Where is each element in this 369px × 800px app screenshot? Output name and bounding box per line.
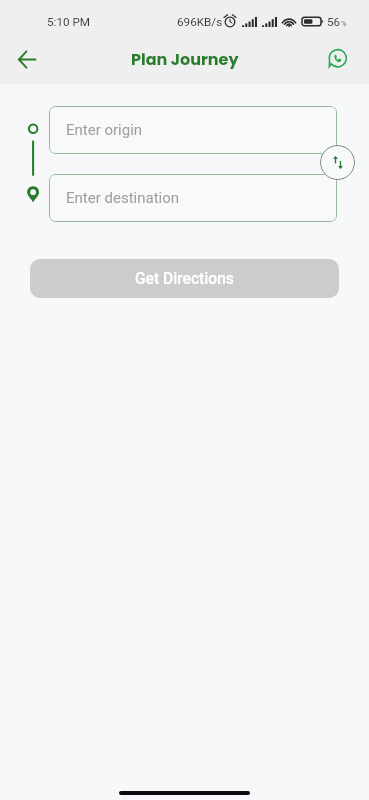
staticText: 696KB/s xyxy=(177,15,223,29)
button[interactable]: Enter origin xyxy=(49,106,337,154)
staticText: % xyxy=(341,19,347,28)
button[interactable]: WhatsApp xyxy=(320,42,353,75)
staticText: 56 xyxy=(327,15,341,29)
staticText: Enter destination xyxy=(66,189,180,207)
staticText: Plan Journey xyxy=(131,48,239,70)
button[interactable]: Swap origin and destination xyxy=(320,145,355,180)
button[interactable]: Enter destination xyxy=(49,174,337,222)
button[interactable]: Back xyxy=(8,40,46,78)
button[interactable]: Get Directions xyxy=(30,259,339,298)
staticText: Enter origin xyxy=(66,121,143,139)
staticText: 5:10 PM xyxy=(47,15,91,29)
staticText: Get Directions xyxy=(135,270,234,288)
